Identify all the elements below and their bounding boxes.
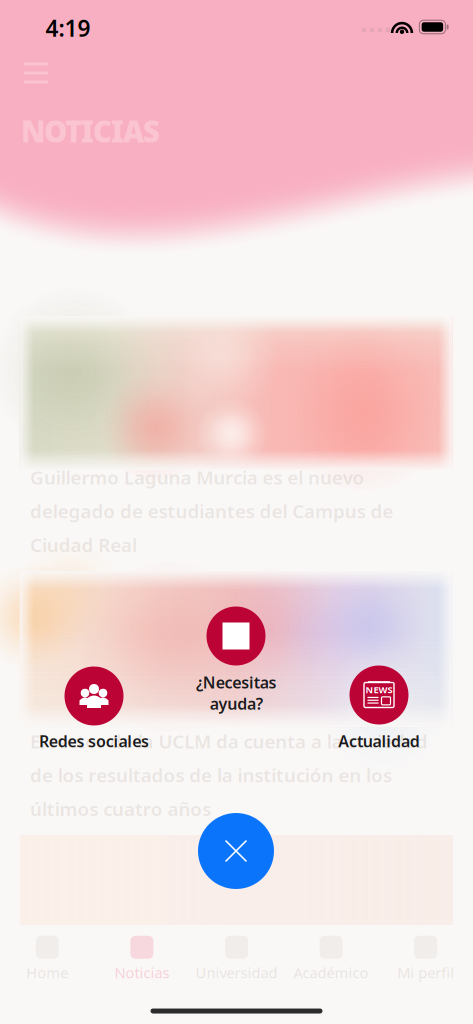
staticText: NEWS: [365, 683, 392, 696]
button[interactable]: ¿Necesitas ayuda?: [206, 606, 265, 665]
staticText: Redes sociales: [39, 730, 149, 752]
button[interactable]: Cerrar menú: [198, 813, 274, 889]
button[interactable]: Home: [0, 936, 95, 998]
staticText: Académico: [294, 963, 369, 982]
staticText: ¿Necesitas ayuda?: [196, 672, 276, 714]
staticText: de los resultados de la institución en l…: [30, 763, 392, 787]
button[interactable]: Universidad: [189, 936, 284, 998]
button[interactable]: Mi perfil: [378, 936, 473, 998]
button[interactable]: Redes sociales: [64, 666, 123, 725]
staticText: delegado de estudiantes del Campus de: [30, 499, 393, 523]
staticText: NOTICIAS: [21, 111, 160, 150]
staticText: Ciudad Real: [30, 532, 137, 557]
staticText: 4:19: [45, 13, 90, 43]
staticText: Guillermo Laguna Murcia es el nuevo: [30, 465, 365, 490]
staticText: Home: [26, 963, 68, 982]
button[interactable]: Académico: [284, 936, 378, 998]
staticText: Universidad: [195, 963, 277, 982]
staticText: Actualidad: [338, 730, 420, 752]
staticText: El rector de la UCLM da cuenta a la soci…: [30, 729, 428, 754]
staticText: últimos cuatro años: [30, 796, 211, 821]
button[interactable]: Noticias: [95, 936, 189, 998]
button[interactable]: Actualidad: [349, 665, 408, 724]
staticText: Noticias: [114, 963, 169, 982]
staticText: Mi perfil: [397, 963, 454, 982]
